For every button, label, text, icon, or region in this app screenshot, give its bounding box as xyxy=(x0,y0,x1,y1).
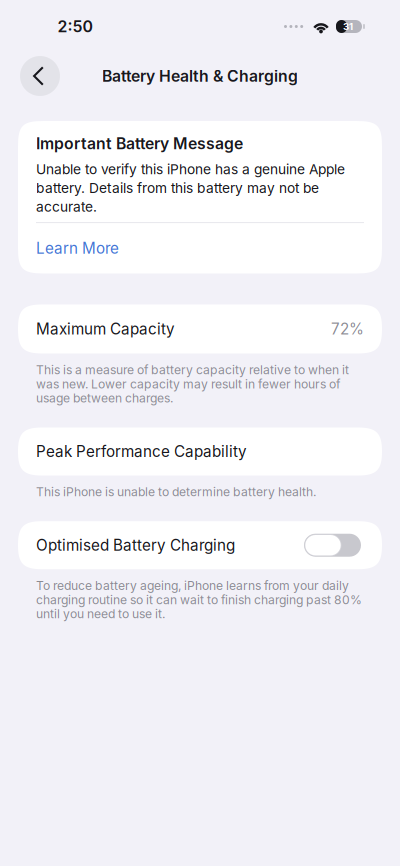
staticText: Battery Health & Charging xyxy=(102,66,298,85)
button[interactable]: Maximum Capacity xyxy=(18,304,382,353)
staticText: Maximum Capacity xyxy=(36,320,175,338)
button[interactable]: Learn More xyxy=(36,239,119,257)
staticText: Unable to verify this iPhone has a genui… xyxy=(36,161,345,215)
button[interactable]: Optimised Battery Charging xyxy=(18,521,382,569)
staticText: Peak Performance Capability xyxy=(36,442,247,461)
staticText: This is a measure of battery capacity re… xyxy=(36,362,349,405)
staticText: This iPhone is unable to determine batte… xyxy=(36,484,316,499)
staticText: 2:50 xyxy=(57,17,92,36)
staticText: Important Battery Message xyxy=(36,134,243,153)
staticText: Optimised Battery Charging xyxy=(36,536,235,554)
staticText: 72% xyxy=(331,320,364,338)
button[interactable]: Back xyxy=(20,56,60,96)
staticText: Learn More xyxy=(36,239,119,257)
staticText: To reduce battery ageing, iPhone learns … xyxy=(36,578,362,621)
button[interactable]: Peak Performance Capability xyxy=(18,427,382,475)
staticText: 31 xyxy=(343,21,353,32)
